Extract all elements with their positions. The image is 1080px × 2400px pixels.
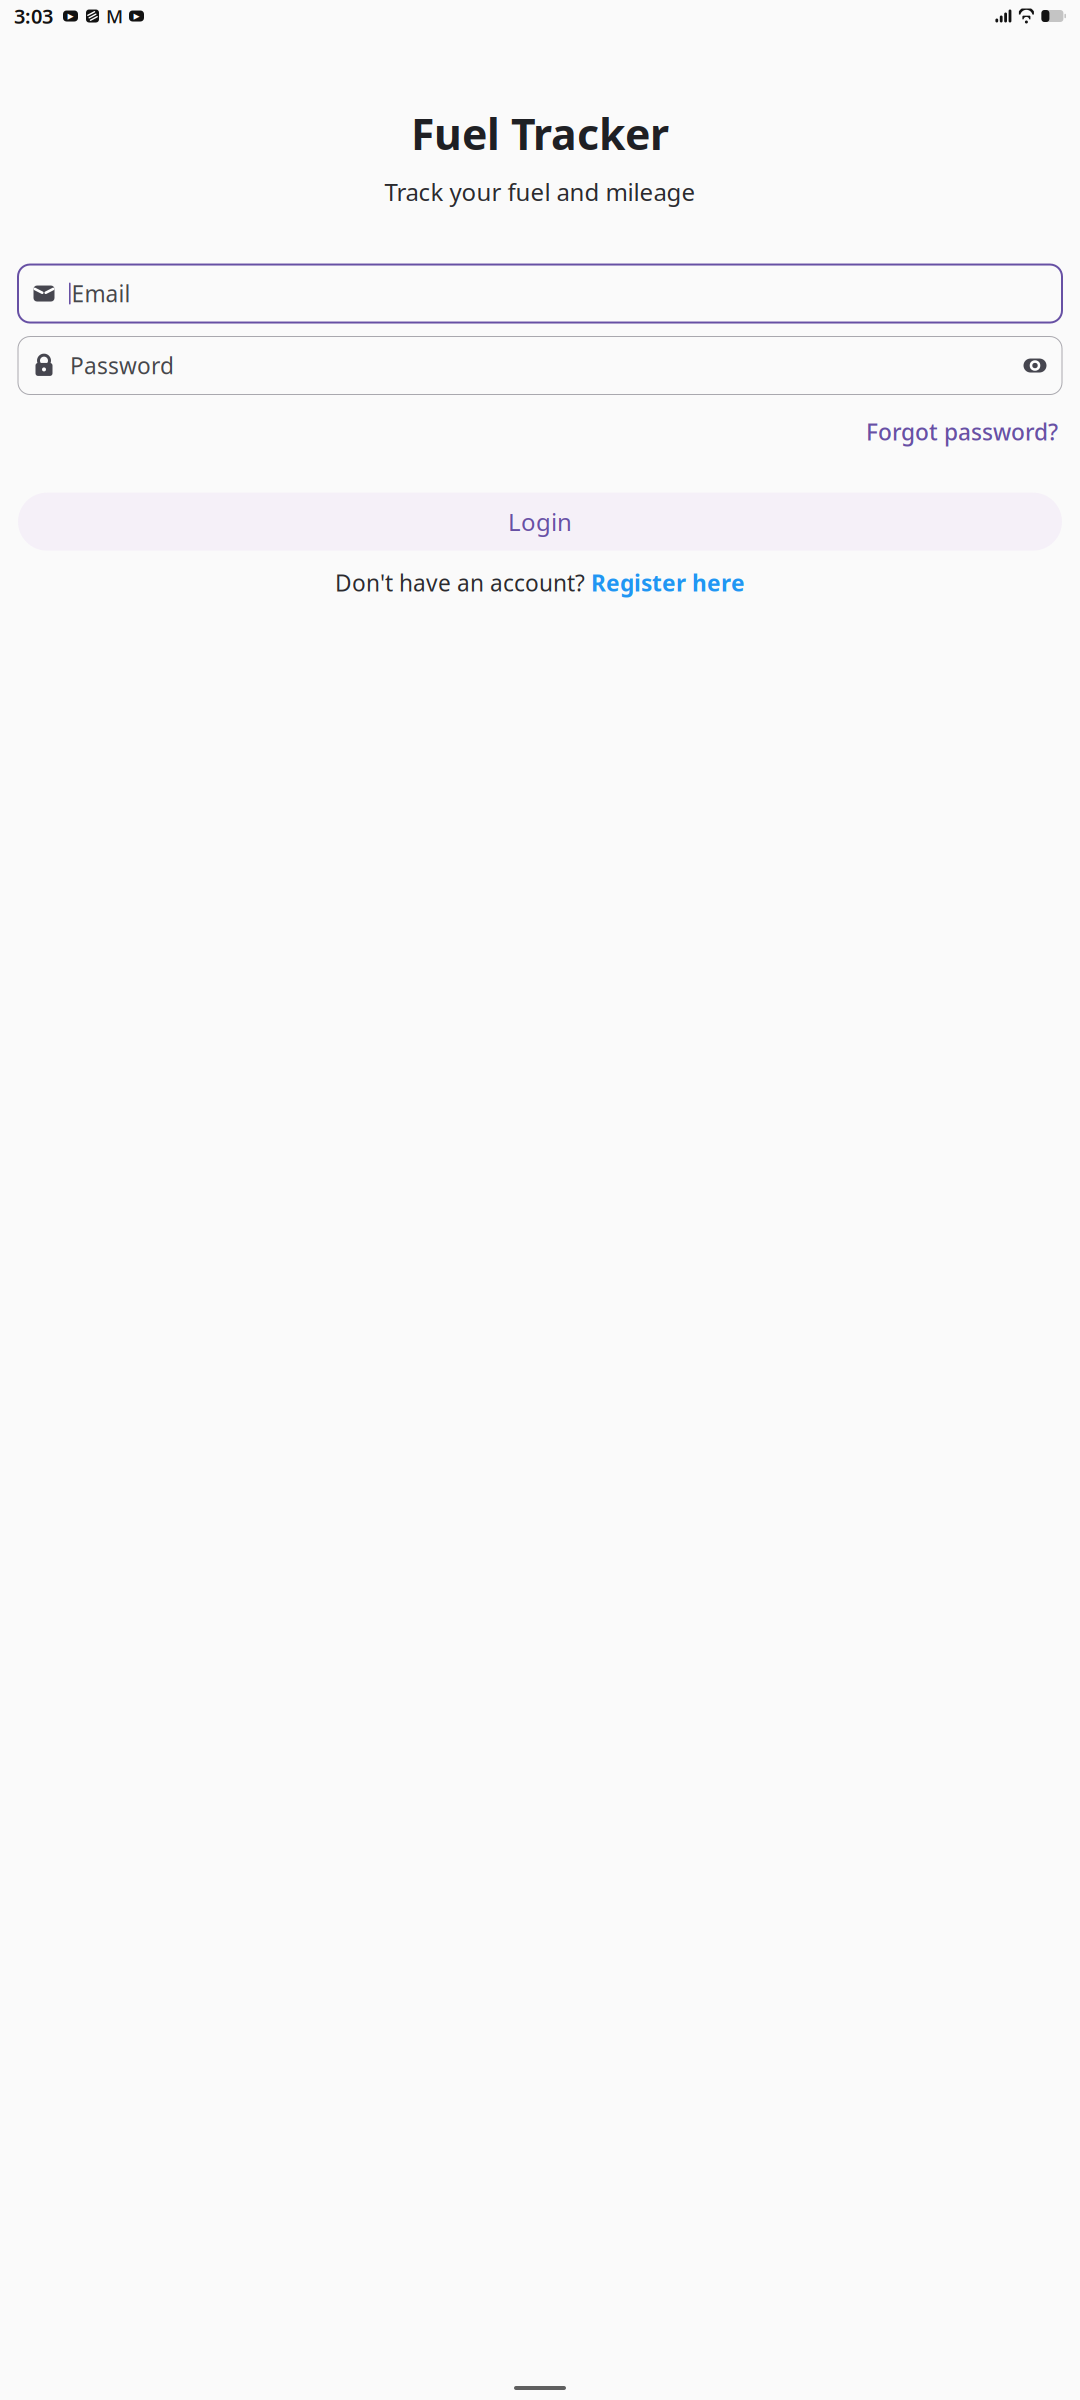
staticText: M [106,4,123,28]
staticText: 3:03 [14,3,53,29]
button[interactable]: Email [18,264,1062,322]
staticText: Track your fuel and mileage [384,176,695,208]
staticText: Forgot password? [866,416,1058,447]
staticText: Fuel Tracker [411,105,669,162]
staticText: Email [72,278,131,309]
staticText: ▶ [133,11,139,21]
button[interactable]: Login [18,493,1062,551]
button[interactable]: Password [18,336,1062,394]
staticText: ▶ [67,11,73,21]
button[interactable]: Register here [591,568,745,598]
staticText: Password [70,350,174,381]
button[interactable]: Forgot password? [866,410,1058,453]
button[interactable]: Show password [1022,354,1048,376]
staticText: Register here [591,568,745,598]
staticText: Login [508,506,572,538]
staticText: Don't have an account? [335,568,591,598]
